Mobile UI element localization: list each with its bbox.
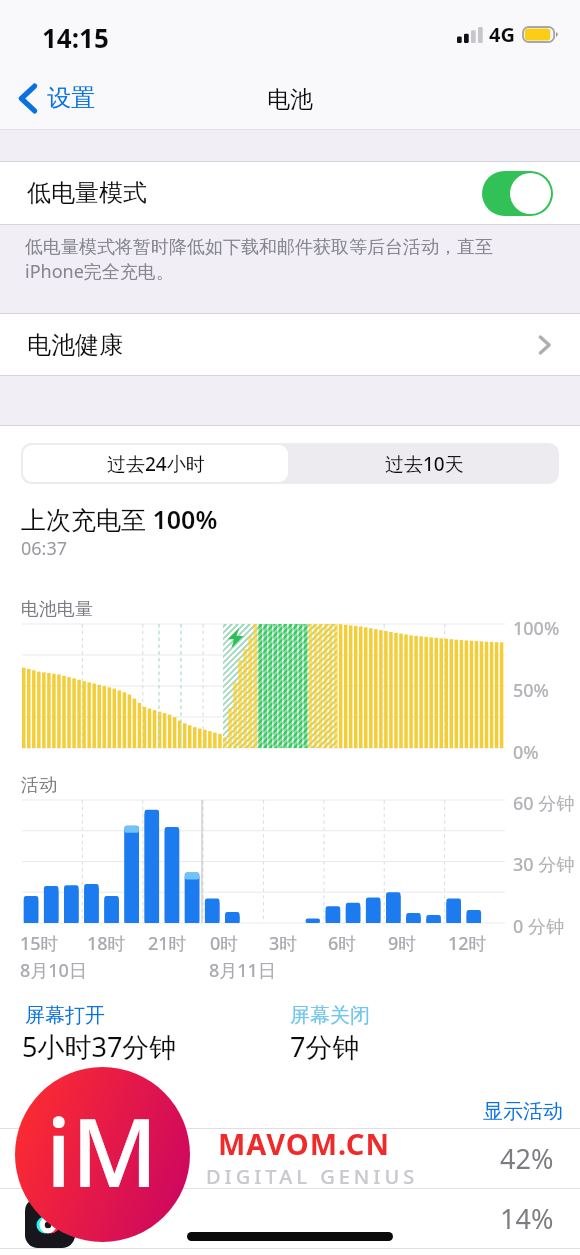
staticText: 0时 (210, 931, 239, 956)
staticText: 0% (513, 740, 539, 765)
staticText: 14:15 (42, 20, 109, 55)
button[interactable]: 显示活动 (476, 1096, 570, 1127)
staticText: 屏幕关闭 (290, 1003, 370, 1028)
staticText: 14% (500, 1200, 554, 1237)
button[interactable]: 低电量模式 (0, 162, 580, 224)
staticText: 电池健康 (27, 330, 123, 360)
staticText: 电池 (267, 85, 313, 114)
staticText: 过去10天 (385, 451, 464, 477)
other: Battery Health (539, 336, 550, 354)
button[interactable]: 14% (0, 1189, 580, 1248)
staticText: 9时 (388, 931, 417, 956)
staticText: DIGITAL GENIUS (206, 1163, 419, 1190)
button[interactable]: 电池健康 (0, 314, 580, 375)
staticText: 低电量模式将暂时降低如下载和邮件获取等后台活动，直至 iPhone完全充电。 (25, 236, 493, 283)
staticText: 30 分钟 (513, 852, 575, 877)
staticText: 低电量模式 (27, 178, 147, 208)
staticText: 8月11日 (209, 958, 276, 983)
staticText: 5小时37分钟 (22, 1028, 177, 1065)
button[interactable]: Low Power Mode toggle (482, 171, 553, 216)
staticText: iM (46, 1087, 158, 1215)
button[interactable]: 设置 (12, 78, 105, 118)
staticText: 过去24小时 (107, 451, 205, 477)
button[interactable]: 过去10天 (290, 443, 559, 484)
staticText: 显示活动 (483, 1099, 563, 1124)
staticText: 12时 (448, 931, 487, 956)
staticText: 屏幕打开 (25, 1003, 105, 1028)
button[interactable]: 42% (0, 1129, 580, 1188)
staticText: 设置 (47, 83, 95, 113)
staticText: 21时 (148, 931, 187, 956)
staticText: 60 分钟 (513, 791, 575, 816)
button[interactable]: 过去24小时 (23, 445, 288, 482)
staticText: 0 分钟 (513, 914, 564, 939)
staticText: 活动 (21, 774, 57, 797)
staticText: 42% (500, 1140, 554, 1177)
staticText: 7分钟 (290, 1028, 360, 1065)
staticText: 8月10日 (20, 958, 87, 983)
staticText: 6时 (328, 931, 357, 956)
staticText: 电池电量 (21, 598, 93, 621)
staticText: MAVOM.CN (218, 1124, 390, 1163)
staticText: 100% (513, 616, 560, 641)
staticText: 50% (513, 678, 549, 703)
staticText: 06:37 (21, 536, 68, 561)
staticText: 3时 (269, 931, 298, 956)
staticText: 上次充电至 100% (21, 502, 218, 536)
staticText: 18时 (87, 931, 126, 956)
staticText: 4G (489, 21, 515, 48)
staticText: 15时 (20, 931, 59, 956)
